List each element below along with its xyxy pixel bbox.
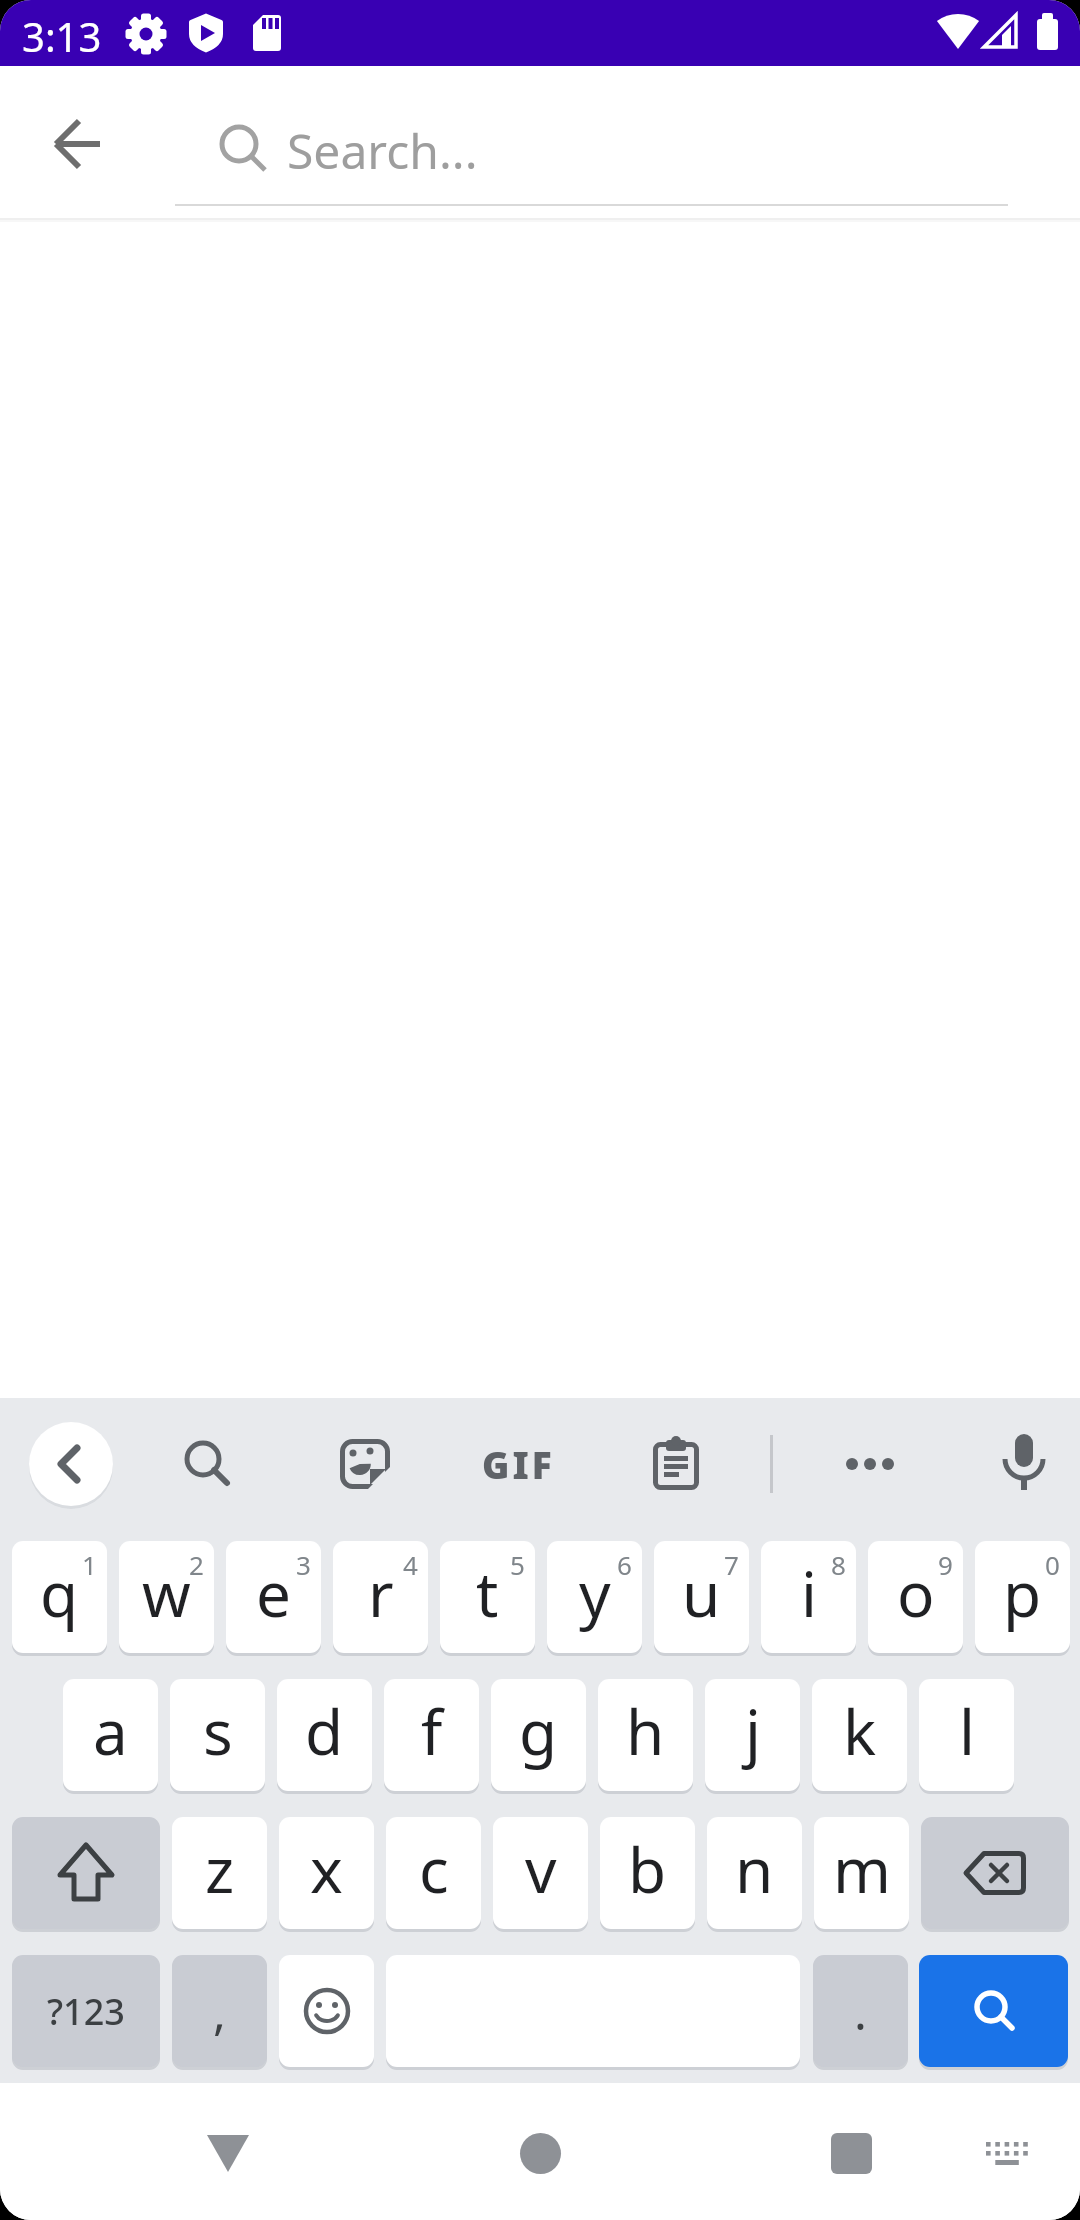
button[interactable]: GIF — [468, 1432, 568, 1496]
staticText: GIF — [482, 1439, 555, 1489]
staticText: p — [1003, 1551, 1042, 1635]
staticText: e — [256, 1551, 291, 1635]
button[interactable] — [972, 2123, 1042, 2183]
button[interactable] — [176, 2111, 280, 2195]
staticText: . — [854, 1979, 867, 2044]
button[interactable] — [12, 1541, 107, 1653]
staticText: 2 — [189, 1547, 204, 1582]
button[interactable] — [491, 1679, 586, 1791]
staticText: 9 — [938, 1547, 953, 1582]
staticText: h — [626, 1689, 665, 1773]
staticText: j — [745, 1689, 761, 1773]
button[interactable] — [440, 1541, 535, 1653]
staticText: n — [735, 1827, 774, 1911]
staticText: f — [421, 1689, 443, 1773]
staticText: 7 — [724, 1547, 739, 1582]
button[interactable] — [172, 1817, 267, 1929]
button[interactable] — [175, 1432, 239, 1496]
button[interactable] — [279, 1955, 374, 2067]
button[interactable] — [814, 1817, 909, 1929]
staticText: 3 — [296, 1547, 311, 1582]
button[interactable] — [333, 1541, 428, 1653]
button[interactable] — [488, 2111, 592, 2195]
button[interactable] — [12, 1817, 160, 1929]
staticText: a — [93, 1689, 128, 1773]
button[interactable] — [707, 1817, 802, 1929]
staticText: l — [959, 1689, 975, 1773]
button[interactable] — [333, 1432, 397, 1496]
staticText: 6 — [617, 1547, 632, 1582]
staticText: i — [801, 1551, 817, 1635]
button[interactable] — [63, 1679, 158, 1791]
button[interactable] — [919, 1679, 1014, 1791]
staticText: s — [203, 1689, 233, 1773]
staticText: m — [833, 1827, 891, 1911]
button[interactable] — [119, 1541, 214, 1653]
staticText: y — [579, 1551, 611, 1635]
staticText: ?123 — [47, 1987, 125, 2036]
button[interactable] — [29, 1422, 113, 1506]
button[interactable] — [279, 1817, 374, 1929]
staticText: r — [368, 1551, 394, 1635]
button[interactable] — [493, 1817, 588, 1929]
button[interactable] — [992, 1424, 1056, 1504]
button[interactable] — [386, 1817, 481, 1929]
staticText: t — [476, 1551, 499, 1635]
button[interactable] — [644, 1432, 708, 1496]
staticText: d — [305, 1689, 344, 1773]
staticText: 1 — [82, 1547, 97, 1582]
button[interactable] — [761, 1541, 856, 1653]
button[interactable] — [170, 1679, 265, 1791]
button[interactable] — [975, 1541, 1070, 1653]
button[interactable] — [547, 1541, 642, 1653]
button[interactable]: ?123 — [12, 1955, 160, 2067]
button[interactable] — [598, 1679, 693, 1791]
staticText: Search... — [287, 118, 478, 183]
button[interactable] — [868, 1541, 963, 1653]
staticText: k — [843, 1689, 877, 1773]
staticText: w — [142, 1551, 191, 1635]
staticText: c — [419, 1827, 449, 1911]
staticText: b — [628, 1827, 667, 1911]
button[interactable] — [654, 1541, 749, 1653]
button[interactable] — [919, 1955, 1068, 2067]
button[interactable]: , — [172, 1955, 267, 2067]
button[interactable] — [44, 110, 112, 178]
staticText: 3:13 — [22, 9, 102, 63]
staticText: x — [310, 1827, 343, 1911]
staticText: 0 — [1045, 1547, 1060, 1582]
button[interactable] — [835, 1432, 905, 1496]
staticText: g — [519, 1689, 558, 1773]
staticText: v — [525, 1827, 557, 1911]
staticText: q — [40, 1551, 79, 1635]
button[interactable] — [812, 1679, 907, 1791]
staticText: 5 — [510, 1547, 525, 1582]
button[interactable] — [705, 1679, 800, 1791]
staticText: o — [897, 1551, 935, 1635]
button[interactable] — [384, 1679, 479, 1791]
button[interactable]: Search... — [175, 96, 1008, 206]
button[interactable]: . — [813, 1955, 908, 2067]
button[interactable] — [226, 1541, 321, 1653]
staticText: , — [213, 1979, 226, 2044]
button[interactable] — [799, 2111, 903, 2195]
button[interactable] — [921, 1817, 1069, 1929]
staticText: u — [682, 1551, 721, 1635]
staticText: 8 — [831, 1547, 846, 1582]
button[interactable] — [277, 1679, 372, 1791]
staticText: 4 — [403, 1547, 418, 1582]
staticText: z — [205, 1827, 235, 1911]
button[interactable] — [600, 1817, 695, 1929]
